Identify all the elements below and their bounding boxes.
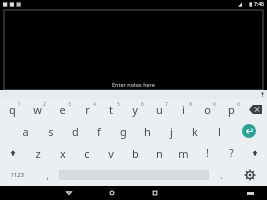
button[interactable]: v — [99, 142, 123, 164]
staticText: Enter notes here — [112, 81, 155, 88]
button[interactable]: Back — [55, 186, 82, 200]
staticText: t — [109, 102, 113, 117]
staticText: x — [60, 146, 66, 161]
staticText: s — [48, 124, 54, 139]
button[interactable]: o — [195, 99, 219, 120]
staticText: ?123 — [11, 171, 24, 179]
staticText: w — [33, 102, 42, 117]
button[interactable]: Backspace — [243, 99, 267, 120]
button[interactable]: u — [147, 99, 171, 120]
button[interactable]: e — [50, 99, 75, 120]
staticText: 4 — [93, 101, 96, 108]
staticText: 3 — [68, 101, 71, 108]
staticText: 9 — [213, 101, 216, 108]
staticText: p — [228, 102, 235, 117]
staticText: 8 — [189, 101, 192, 108]
button[interactable]: d — [63, 120, 87, 142]
button[interactable]: Enter — [231, 120, 267, 142]
button[interactable]: Enter notes here — [4, 10, 263, 90]
staticText: , — [46, 170, 49, 181]
staticText: d — [72, 124, 79, 139]
staticText: z — [35, 146, 41, 161]
staticText: 7:46 — [254, 1, 264, 8]
staticText: u — [156, 102, 163, 117]
button[interactable]: Switch keyboard — [237, 186, 264, 200]
button[interactable]: y — [123, 99, 147, 120]
staticText: h — [144, 124, 151, 139]
button[interactable]: g — [111, 120, 135, 142]
button[interactable]: Home — [98, 186, 125, 200]
staticText: e — [59, 102, 66, 117]
staticText: r — [85, 102, 90, 117]
button[interactable]: l — [207, 120, 231, 142]
staticText: q — [9, 102, 16, 117]
staticText: j — [170, 124, 173, 139]
button[interactable]: , — [35, 164, 59, 186]
staticText: k — [192, 124, 198, 139]
button[interactable]: q — [0, 99, 25, 120]
staticText: b — [132, 146, 139, 161]
staticText: l — [218, 124, 221, 139]
staticText: m — [178, 146, 189, 161]
button[interactable]: a — [13, 120, 38, 142]
staticText: y — [132, 102, 138, 117]
button[interactable]: c — [75, 142, 99, 164]
button[interactable]: ? — [219, 142, 243, 164]
staticText: 7 — [165, 101, 168, 108]
button[interactable]: ! — [195, 142, 219, 164]
staticText: i — [182, 102, 185, 117]
staticText: o — [204, 102, 211, 117]
staticText: 6 — [141, 101, 144, 108]
button[interactable]: k — [183, 120, 207, 142]
button[interactable]: h — [135, 120, 159, 142]
staticText: ! — [206, 146, 209, 160]
staticText: v — [108, 146, 114, 161]
staticText: 2 — [43, 101, 46, 108]
button[interactable]: s — [38, 120, 63, 142]
button[interactable]: . — [209, 164, 233, 186]
staticText: 0 — [237, 101, 240, 108]
staticText: n — [156, 146, 163, 161]
button[interactable]: w — [25, 99, 50, 120]
staticText: 1 — [18, 101, 21, 108]
staticText: . — [220, 170, 223, 181]
button[interactable]: p — [219, 99, 243, 120]
button[interactable]: Recent apps — [141, 186, 168, 200]
button[interactable]: j — [159, 120, 183, 142]
button[interactable]: Shift — [243, 142, 267, 164]
button[interactable]: Shift — [0, 142, 25, 164]
button[interactable]: f — [87, 120, 111, 142]
button[interactable]: z — [25, 142, 50, 164]
button[interactable]: Keyboard settings — [233, 164, 267, 186]
button[interactable]: b — [123, 142, 147, 164]
staticText: ? — [229, 146, 234, 160]
staticText: c — [84, 146, 90, 161]
button[interactable]: Voice input — [258, 90, 267, 99]
button[interactable]: i — [171, 99, 195, 120]
button[interactable]: n — [147, 142, 171, 164]
staticText: f — [97, 124, 101, 139]
staticText: a — [22, 124, 29, 139]
button[interactable]: t — [99, 99, 123, 120]
staticText: 5 — [117, 101, 120, 108]
staticText: g — [120, 124, 127, 139]
button[interactable]: r — [75, 99, 99, 120]
button[interactable]: m — [171, 142, 195, 164]
button[interactable]: ?123 — [0, 164, 35, 186]
button[interactable]: x — [50, 142, 75, 164]
